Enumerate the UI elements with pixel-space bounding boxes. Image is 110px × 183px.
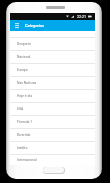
button[interactable]: Hoje é dia [10, 89, 95, 102]
button[interactable]: Europa [10, 63, 95, 76]
button[interactable]: EUA [10, 102, 95, 115]
staticText: EUA [17, 107, 24, 111]
button[interactable]: Nas Notícias [10, 76, 95, 89]
staticText: Hoje é dia [17, 94, 33, 98]
staticText: Fórmula 1 [17, 120, 33, 124]
staticText: Categorias [25, 23, 44, 28]
staticText: Desporto [17, 42, 31, 46]
button[interactable]: Nacional [10, 50, 95, 63]
button[interactable]: Divertido [10, 128, 95, 141]
button[interactable]: Desporto [10, 37, 95, 50]
button[interactable]: Open navigation menu [12, 20, 21, 31]
staticText: Divertido [17, 133, 31, 137]
staticText: Internacional [17, 158, 37, 162]
staticText: Nacional [17, 55, 31, 59]
button[interactable]: Open navigation menu [10, 20, 95, 31]
staticText: Nas Notícias [17, 81, 37, 85]
staticText: Inédito [17, 146, 28, 150]
button[interactable]: Internacional [10, 154, 95, 165]
staticText: 22:21 [77, 15, 86, 19]
staticText: Europa [17, 68, 28, 72]
button[interactable]: Fórmula 1 [10, 115, 95, 128]
button[interactable]: Inédito [10, 141, 95, 154]
